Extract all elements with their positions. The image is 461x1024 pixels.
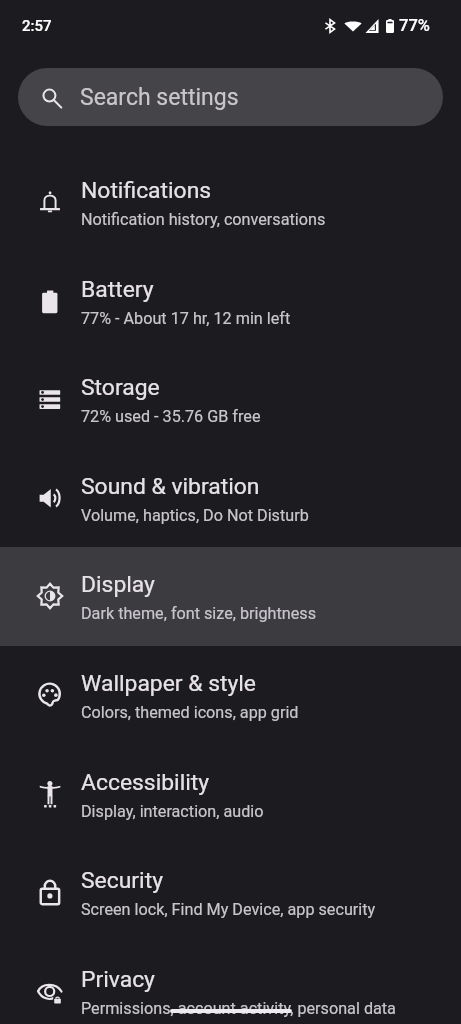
staticText: Display, interaction, audio xyxy=(81,802,264,821)
staticText: Notifications xyxy=(81,177,212,204)
staticText: Sound & vibration xyxy=(81,473,260,500)
staticText: Battery xyxy=(81,276,154,303)
staticText: Dark theme, font size, brightness xyxy=(81,604,317,623)
staticText: Display xyxy=(81,571,155,598)
button[interactable]: Accessibility xyxy=(0,742,461,840)
button[interactable]: Notifications xyxy=(0,150,461,249)
button[interactable]: Battery xyxy=(0,249,461,347)
staticText: Volume, haptics, Do Not Disturb xyxy=(81,506,309,525)
button[interactable]: Security xyxy=(0,840,461,939)
staticText: Notification history, conversations xyxy=(81,210,326,229)
staticText: Permissions, account activity, personal … xyxy=(81,999,396,1018)
staticText: Accessibility xyxy=(81,769,210,796)
staticText: 2:57 xyxy=(22,17,52,35)
staticText: 72% used - 35.76 GB free xyxy=(81,407,261,426)
button[interactable]: Sound & vibration xyxy=(0,446,461,544)
staticText: Privacy xyxy=(81,966,155,993)
staticText: Screen lock, Find My Device, app securit… xyxy=(81,900,376,919)
button[interactable]: Storage xyxy=(0,347,461,446)
staticText: Search settings xyxy=(80,84,239,111)
button[interactable]: Display xyxy=(0,544,461,643)
button[interactable]: Privacy xyxy=(0,939,461,1024)
staticText: Colors, themed icons, app grid xyxy=(81,703,299,722)
button[interactable]: Wallpaper & style xyxy=(0,643,461,742)
button[interactable]: Search settings xyxy=(18,68,443,126)
staticText: Security xyxy=(81,867,163,894)
staticText: Storage xyxy=(81,374,160,401)
staticText: 77% - About 17 hr, 12 min left xyxy=(81,309,291,328)
staticText: Wallpaper & style xyxy=(81,670,257,697)
staticText: 77% xyxy=(399,16,430,35)
